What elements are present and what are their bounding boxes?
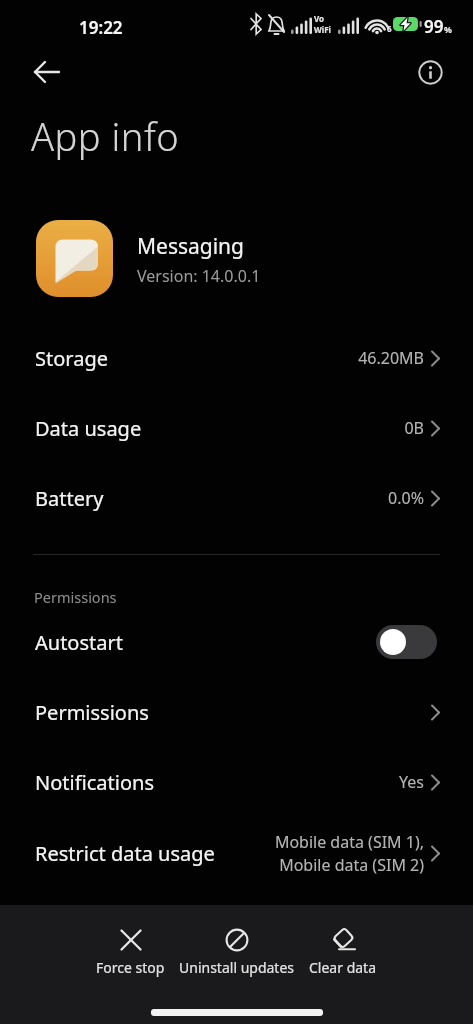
staticText: 19:22: [79, 16, 123, 39]
staticText: Clear data: [309, 958, 377, 977]
staticText: %: [444, 23, 452, 35]
staticText: WiFi: [314, 24, 331, 35]
staticText: Autostart: [35, 629, 123, 656]
button[interactable]: Clear data: [309, 927, 377, 977]
staticText: Yes: [399, 771, 424, 793]
staticText: 99: [424, 15, 444, 38]
button[interactable]: [28, 55, 66, 89]
staticText: Restrict data usage: [35, 840, 215, 867]
staticText: 0B: [404, 417, 424, 439]
staticText: Uninstall updates: [179, 958, 295, 977]
button[interactable]: Permissions: [0, 680, 473, 744]
button[interactable]: Autostart: [0, 610, 473, 674]
staticText: 46.20MB: [358, 347, 424, 369]
button[interactable]: Force stop: [96, 927, 165, 977]
staticText: 0.0%: [388, 487, 424, 509]
button[interactable]: Data usage: [0, 396, 473, 460]
staticText: Storage: [35, 345, 108, 372]
staticText: 6: [387, 23, 392, 34]
staticText: Notifications: [35, 769, 154, 796]
button[interactable]: [376, 625, 437, 659]
button[interactable]: [411, 53, 449, 91]
staticText: Battery: [35, 485, 104, 512]
staticText: Data usage: [35, 415, 142, 442]
staticText: Force stop: [96, 958, 165, 977]
staticText: Permissions: [34, 587, 117, 607]
staticText: Permissions: [35, 699, 149, 726]
staticText: Vo: [314, 13, 325, 24]
staticText: Messaging: [137, 232, 245, 261]
button[interactable]: Storage: [0, 326, 473, 390]
button[interactable]: Battery: [0, 466, 473, 530]
staticText: Version: 14.0.0.1: [137, 265, 261, 287]
button[interactable]: Uninstall updates: [179, 927, 295, 977]
staticText: Mobile data (SIM 1), Mobile data (SIM 2): [274, 831, 424, 876]
button[interactable]: Notifications: [0, 750, 473, 814]
button[interactable]: Restrict data usage: [0, 821, 473, 885]
staticText: App info: [31, 110, 180, 162]
